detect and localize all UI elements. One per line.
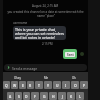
staticText: P — [83, 83, 86, 88]
staticText: L — [79, 94, 81, 99]
staticText: Okay — [14, 76, 21, 80]
staticText: 2:15 PM — [42, 42, 53, 46]
staticText: R — [29, 83, 32, 88]
staticText: you created this channel on a date at so… — [7, 10, 84, 14]
staticText: This is your private chat, where you can… — [15, 27, 64, 39]
button[interactable]: O — [71, 81, 79, 89]
button[interactable]: S — [15, 92, 22, 100]
staticText: August 24, 2:15 AM — [32, 4, 59, 8]
button[interactable]: G — [40, 92, 48, 100]
button[interactable]: Me — [32, 75, 60, 81]
staticText: A — [9, 94, 12, 99]
staticText: O — [74, 83, 77, 88]
staticText: Y — [47, 83, 49, 88]
staticText: username — [13, 21, 28, 25]
staticText: Me — [44, 76, 49, 80]
button[interactable]: I — [62, 81, 70, 89]
staticText: F — [34, 94, 36, 99]
staticText: Ok — [72, 76, 76, 80]
staticText: J — [62, 94, 63, 99]
button[interactable]: Q — [3, 81, 10, 89]
button[interactable]: L — [76, 92, 84, 100]
button[interactable]: Send a message — [4, 64, 87, 71]
staticText: I — [65, 83, 67, 88]
button[interactable]: Sent — [63, 49, 77, 59]
staticText: G — [43, 94, 46, 99]
button[interactable]: A — [7, 92, 14, 100]
staticText: Q — [5, 83, 8, 88]
button[interactable]: E — [19, 81, 26, 89]
button[interactable]: F — [31, 92, 39, 100]
button[interactable]: K — [67, 92, 75, 100]
button[interactable]: W — [11, 81, 18, 89]
button[interactable]: U — [53, 81, 61, 89]
staticText: T — [38, 83, 40, 88]
button[interactable]: P — [80, 81, 88, 89]
button[interactable]: This is your private chat, where you can… — [13, 26, 66, 40]
button[interactable]: R — [27, 81, 34, 89]
button[interactable]: Ok — [60, 75, 88, 81]
staticText: W — [13, 83, 17, 88]
staticText: Sent — [67, 53, 74, 57]
staticText: U — [56, 83, 59, 88]
button[interactable]: T — [35, 81, 43, 89]
button[interactable]: Y — [44, 81, 52, 89]
staticText: name "place" — [37, 14, 55, 18]
staticText: H — [52, 94, 55, 99]
button[interactable]: Reaction — [80, 52, 84, 56]
staticText: D — [25, 94, 28, 99]
staticText: K — [70, 94, 73, 99]
button[interactable]: J — [58, 92, 66, 100]
button[interactable]: Okay — [3, 75, 32, 81]
button[interactable]: H — [49, 92, 57, 100]
staticText: S — [18, 94, 20, 99]
staticText: Send a message — [12, 66, 38, 70]
staticText: E — [22, 83, 24, 88]
button[interactable]: D — [23, 92, 30, 100]
